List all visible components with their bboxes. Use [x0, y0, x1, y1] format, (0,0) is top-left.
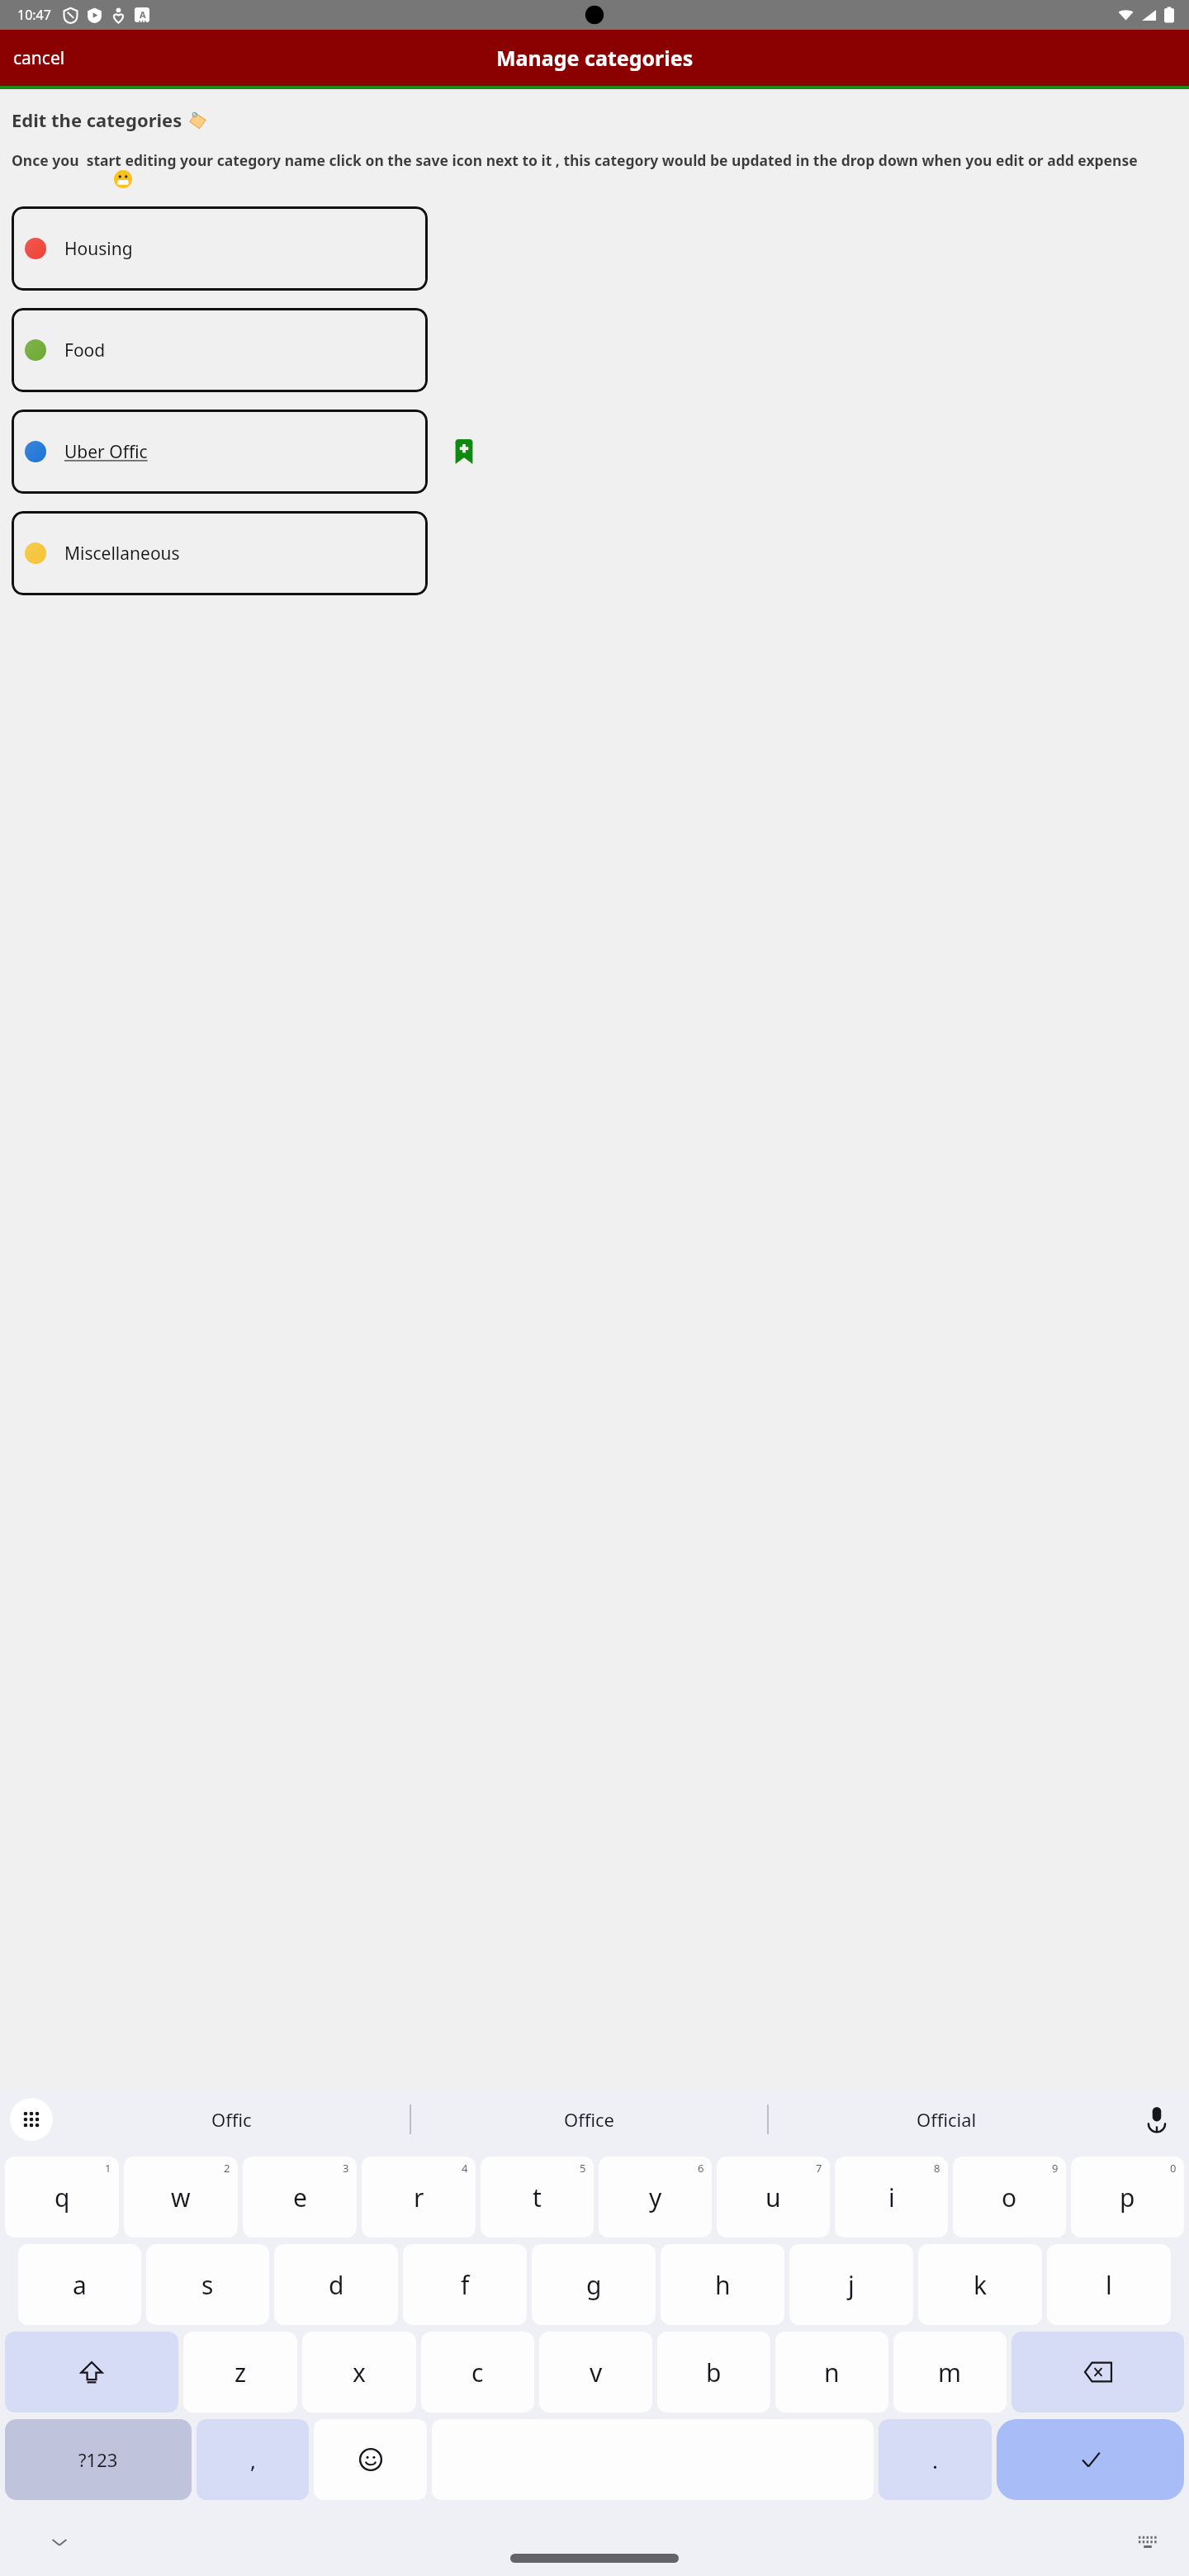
button[interactable]: Backspace: [1011, 2332, 1184, 2413]
staticText: i: [888, 2181, 895, 2214]
button[interactable]: 1: [5, 2157, 119, 2237]
button[interactable]: Offic: [53, 2088, 410, 2150]
staticText: .: [932, 2446, 938, 2474]
staticText: 7: [816, 2161, 822, 2176]
staticText: d: [329, 2268, 344, 2302]
button[interactable]: ?123: [5, 2419, 192, 2500]
button[interactable]: Save category: [446, 433, 482, 470]
staticText: cancel: [13, 46, 65, 70]
button[interactable]: Office: [411, 2088, 767, 2150]
button[interactable]: Housing: [12, 206, 428, 291]
staticText: v: [590, 2356, 603, 2389]
button[interactable]: Shift: [5, 2332, 178, 2413]
button[interactable]: s: [146, 2244, 269, 2325]
staticText: b: [706, 2356, 722, 2389]
button[interactable]: Voice input: [1125, 2088, 1189, 2150]
staticText: u: [765, 2181, 781, 2214]
button[interactable]: b: [657, 2332, 770, 2413]
staticText: s: [201, 2268, 214, 2302]
staticText: c: [471, 2356, 484, 2389]
staticText: Edit the categories: [12, 107, 182, 132]
button[interactable]: 5: [481, 2157, 594, 2237]
staticText: 8: [934, 2161, 940, 2176]
button[interactable]: z: [183, 2332, 297, 2413]
button[interactable]: ,: [197, 2419, 309, 2500]
staticText: 1: [105, 2161, 111, 2176]
staticText: Uber Offic: [64, 440, 148, 464]
staticText: z: [234, 2356, 247, 2389]
button[interactable]: k: [918, 2244, 1042, 2325]
button[interactable]: 4: [362, 2157, 476, 2237]
staticText: m: [938, 2356, 962, 2389]
staticText: q: [54, 2181, 70, 2214]
staticText: t: [533, 2181, 542, 2214]
staticText: Offic: [211, 2107, 252, 2132]
staticText: Miscellaneous: [64, 542, 180, 566]
button[interactable]: v: [539, 2332, 652, 2413]
button[interactable]: a: [18, 2244, 141, 2325]
staticText: f: [461, 2268, 470, 2302]
staticText: Food: [64, 339, 106, 362]
button[interactable]: Keyboard options: [10, 2098, 53, 2141]
staticText: g: [586, 2268, 602, 2302]
button[interactable]: Miscellaneous: [12, 511, 428, 595]
staticText: k: [973, 2268, 988, 2302]
button[interactable]: .: [879, 2419, 992, 2500]
staticText: 10:47: [17, 6, 51, 24]
staticText: 5: [580, 2161, 586, 2176]
staticText: l: [1106, 2268, 1112, 2302]
staticText: x: [353, 2356, 366, 2389]
button[interactable]: cancel: [0, 38, 78, 78]
button[interactable]: 2: [124, 2157, 238, 2237]
staticText: 9: [1052, 2161, 1059, 2176]
button[interactable]: d: [274, 2244, 398, 2325]
staticText: Once you start editing your category nam…: [12, 150, 1177, 170]
staticText: y: [649, 2181, 662, 2214]
button[interactable]: Enter: [997, 2419, 1184, 2500]
button[interactable]: j: [789, 2244, 913, 2325]
button[interactable]: g: [532, 2244, 656, 2325]
staticText: Office: [564, 2107, 614, 2132]
button[interactable]: x: [302, 2332, 416, 2413]
button[interactable]: c: [421, 2332, 534, 2413]
button[interactable]: Uber Offic: [12, 410, 428, 494]
staticText: 6: [698, 2161, 704, 2176]
staticText: n: [824, 2356, 840, 2389]
button[interactable]: Food: [12, 308, 428, 392]
staticText: j: [848, 2268, 855, 2302]
staticText: 3: [343, 2161, 349, 2176]
button[interactable]: 6: [599, 2157, 712, 2237]
staticText: ,: [250, 2446, 256, 2474]
button[interactable]: 7: [717, 2157, 830, 2237]
staticText: a: [73, 2268, 87, 2302]
button[interactable]: m: [893, 2332, 1007, 2413]
staticText: 4: [462, 2161, 468, 2176]
staticText: 0: [1170, 2161, 1177, 2176]
button[interactable]: Hide keyboard: [43, 2526, 76, 2559]
button[interactable]: l: [1047, 2244, 1171, 2325]
staticText: w: [171, 2181, 191, 2214]
staticText: ?123: [78, 2447, 118, 2472]
button[interactable]: Official: [769, 2088, 1125, 2150]
button[interactable]: Switch keyboard: [1131, 2526, 1164, 2559]
staticText: Housing: [64, 237, 133, 261]
staticText: p: [1120, 2181, 1135, 2214]
button[interactable]: 3: [243, 2157, 357, 2237]
button[interactable]: f: [403, 2244, 527, 2325]
button[interactable]: n: [775, 2332, 888, 2413]
button[interactable]: h: [661, 2244, 784, 2325]
button[interactable]: Emoji: [314, 2419, 427, 2500]
staticText: e: [293, 2181, 307, 2214]
button[interactable]: 9: [953, 2157, 1066, 2237]
staticText: A: [140, 8, 146, 21]
staticText: Manage categories: [496, 44, 694, 72]
button[interactable]: 0: [1071, 2157, 1184, 2237]
staticText: 2: [224, 2161, 230, 2176]
staticText: r: [414, 2181, 424, 2214]
staticText: Official: [917, 2107, 977, 2132]
staticText: o: [1002, 2181, 1017, 2214]
button[interactable]: 8: [835, 2157, 948, 2237]
staticText: h: [715, 2268, 731, 2302]
